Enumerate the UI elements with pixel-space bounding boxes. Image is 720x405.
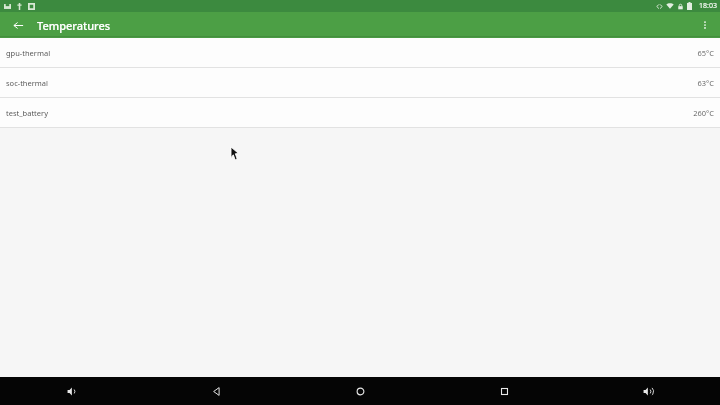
staticText: 65°C <box>697 48 714 58</box>
button[interactable]: Back <box>144 377 288 405</box>
staticText: Temperatures <box>37 18 111 33</box>
button[interactable]: More options <box>695 15 715 35</box>
button[interactable]: Navigate up <box>8 15 28 35</box>
button[interactable]: Home <box>288 377 432 405</box>
button[interactable]: Volume down <box>0 377 144 405</box>
button[interactable]: Volume up <box>576 377 720 405</box>
staticText: 63°C <box>697 78 714 88</box>
staticText: 260°C <box>693 108 714 118</box>
button[interactable]: Recents <box>432 377 576 405</box>
staticText: gpu-thermal <box>6 48 51 58</box>
button[interactable]: soc-thermal <box>0 68 720 97</box>
button[interactable]: test_battery <box>0 98 720 127</box>
staticText: 18:03 <box>699 1 717 11</box>
staticText: test_battery <box>6 108 48 118</box>
staticText: soc-thermal <box>6 78 48 88</box>
button[interactable]: gpu-thermal <box>0 38 720 67</box>
